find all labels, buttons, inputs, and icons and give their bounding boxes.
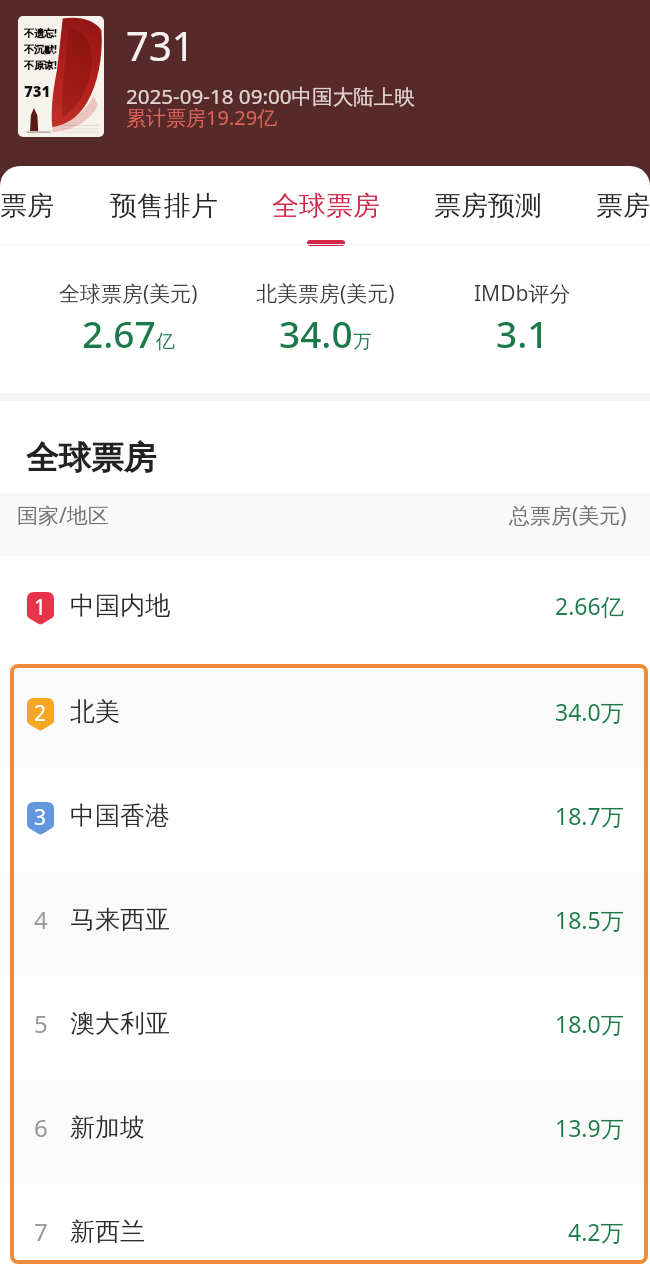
staticText: 2.67 bbox=[82, 308, 156, 358]
staticText: 6 bbox=[34, 1111, 48, 1144]
staticText: 1 bbox=[34, 593, 47, 622]
staticText: 票房 bbox=[596, 189, 650, 223]
staticText: 不沉默! bbox=[24, 42, 57, 56]
staticText: 7 bbox=[34, 1215, 48, 1248]
staticText: 13.9万 bbox=[555, 1112, 624, 1143]
staticText: 新西兰 bbox=[70, 1216, 145, 1247]
staticText: 累计票房19.29亿 bbox=[126, 104, 278, 131]
staticText: 4 bbox=[34, 903, 48, 936]
staticText: 731 bbox=[126, 18, 195, 72]
staticText: 2 bbox=[34, 699, 47, 728]
staticText: 新加坡 bbox=[70, 1112, 145, 1143]
button[interactable]: 预售排片 bbox=[110, 166, 218, 245]
staticText: 亿 bbox=[156, 330, 175, 354]
staticText: 不遗忘! bbox=[24, 26, 57, 40]
staticText: IMDb评分 bbox=[474, 279, 571, 308]
staticText: 3 bbox=[34, 803, 47, 832]
staticText: 中国香港 bbox=[70, 800, 170, 831]
staticText: 万 bbox=[353, 330, 372, 354]
staticText: 18.0万 bbox=[555, 1008, 624, 1039]
staticText: 北美票房(美元) bbox=[256, 279, 395, 308]
staticText: 2025-09-18 09:00中国大陆上映 bbox=[126, 82, 416, 110]
staticText: 澳大利亚 bbox=[70, 1008, 170, 1039]
staticText: 全球票房 bbox=[26, 438, 156, 479]
button[interactable]: 票房 bbox=[0, 166, 54, 245]
staticText: 票房预测 bbox=[434, 189, 542, 223]
button[interactable]: 6 bbox=[0, 1080, 650, 1184]
staticText: 预售排片 bbox=[110, 189, 218, 223]
button[interactable]: 4 bbox=[0, 872, 650, 976]
staticText: 中国内地 bbox=[70, 590, 170, 621]
button[interactable]: 2 bbox=[0, 664, 650, 768]
staticText: 34.0 bbox=[279, 308, 353, 358]
staticText: 731 bbox=[24, 81, 51, 101]
staticText: 3.1 bbox=[496, 308, 549, 358]
staticText: 全球票房 bbox=[272, 189, 380, 223]
button[interactable]: 731 电影海报 bbox=[0, 0, 650, 137]
button[interactable]: 全球票房 bbox=[272, 166, 380, 245]
button[interactable]: 票房 bbox=[596, 166, 650, 245]
staticText: 马来西亚 bbox=[70, 904, 170, 935]
staticText: 2.66亿 bbox=[555, 590, 624, 621]
staticText: 不原谅! bbox=[24, 58, 57, 72]
button[interactable]: 3 bbox=[0, 768, 650, 872]
staticText: 5 bbox=[34, 1007, 48, 1040]
staticText: 北美 bbox=[70, 696, 120, 727]
button[interactable]: 7 bbox=[0, 1184, 650, 1269]
staticText: 全球票房(美元) bbox=[59, 279, 198, 308]
staticText: 34.0万 bbox=[555, 696, 624, 727]
staticText: 总票房(美元) bbox=[509, 501, 627, 530]
button[interactable]: 票房预测 bbox=[434, 166, 542, 245]
staticText: 4.2万 bbox=[568, 1216, 624, 1247]
button[interactable]: 5 bbox=[0, 976, 650, 1080]
staticText: 票房 bbox=[0, 189, 54, 223]
staticText: 18.7万 bbox=[555, 800, 624, 831]
other: 731 电影海报 bbox=[18, 16, 104, 137]
staticText: 18.5万 bbox=[555, 904, 624, 935]
button[interactable]: 1 bbox=[0, 556, 650, 664]
staticText: 国家/地区 bbox=[17, 501, 109, 530]
